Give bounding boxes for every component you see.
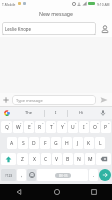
button[interactable]: Hi (68, 107, 94, 119)
button[interactable] (38, 184, 75, 200)
button[interactable]: , (17, 169, 26, 181)
staticText: P (104, 124, 108, 131)
staticText: Q (5, 124, 9, 131)
button[interactable]: S (18, 137, 28, 149)
button[interactable]: R (35, 121, 45, 133)
button[interactable] (0, 107, 14, 119)
staticText: H (65, 140, 69, 147)
button[interactable] (99, 169, 111, 181)
staticText: T (50, 124, 53, 131)
button[interactable]: O (90, 121, 100, 133)
button[interactable]: V (52, 153, 62, 165)
button[interactable]: B (63, 153, 73, 165)
button[interactable] (94, 107, 112, 119)
staticText: F (44, 140, 47, 147)
staticText: Leslie Knope (5, 26, 32, 32)
button[interactable]: G (51, 137, 61, 149)
button[interactable]: U (68, 121, 78, 133)
staticText: . (93, 172, 95, 179)
button[interactable]: The (14, 107, 44, 119)
staticText: New message (39, 10, 73, 17)
button[interactable]: X (29, 153, 40, 165)
button[interactable]: A (7, 137, 17, 149)
staticText: Hi (79, 110, 84, 116)
staticText: D (32, 140, 36, 147)
button[interactable]: J (73, 137, 83, 149)
staticText: E (28, 124, 31, 131)
button[interactable]: Y (57, 121, 67, 133)
staticText: 4 (42, 121, 44, 124)
staticText: K (87, 140, 91, 147)
button[interactable]: E (24, 121, 34, 133)
button[interactable]: ?123 (1, 169, 16, 181)
button[interactable] (0, 93, 12, 106)
button[interactable]: M (85, 153, 95, 165)
button[interactable]: T (46, 121, 56, 133)
button[interactable] (0, 184, 38, 200)
button[interactable]: F (40, 137, 50, 149)
button[interactable]: I (79, 121, 89, 133)
button[interactable]: EN · ES (37, 169, 88, 181)
staticText: 9 (97, 121, 99, 124)
button[interactable]: N (74, 153, 84, 165)
staticText: I (55, 110, 57, 116)
staticText: Y (61, 124, 64, 131)
button[interactable]: H (62, 137, 72, 149)
button[interactable] (27, 169, 36, 181)
staticText: 7 (75, 121, 77, 124)
staticText: I (83, 124, 85, 131)
staticText: 6 (64, 121, 66, 124)
staticText: V (55, 156, 59, 163)
staticText: J (77, 140, 79, 147)
staticText: U (71, 124, 75, 131)
staticText: W (16, 124, 21, 131)
button[interactable]: L (95, 137, 105, 149)
button[interactable]: I (45, 107, 67, 119)
staticText: Type message (16, 98, 43, 103)
staticText: O (93, 124, 97, 131)
staticText: 5 (53, 121, 55, 124)
button[interactable] (75, 184, 112, 200)
button[interactable] (96, 93, 112, 106)
staticText: N (77, 156, 81, 163)
button[interactable] (1, 153, 16, 165)
button[interactable]: D (29, 137, 39, 149)
staticText: 8 (86, 121, 88, 124)
staticText: ?123 (5, 173, 13, 178)
staticText: EN · ES (59, 174, 68, 178)
button[interactable]: C (41, 153, 51, 165)
staticText: T-Mobile (2, 2, 16, 6)
staticText: L (99, 140, 102, 147)
button[interactable]: . (89, 169, 98, 181)
staticText: X (33, 156, 36, 163)
staticText: M (88, 156, 93, 163)
button[interactable]: P (101, 121, 111, 133)
button[interactable]: Type message (12, 95, 96, 105)
button[interactable]: Z (17, 153, 28, 165)
staticText: 2 (20, 121, 22, 124)
staticText: R (38, 124, 42, 131)
staticText: 9:10 AM (97, 2, 110, 6)
staticText: C (44, 156, 48, 163)
button[interactable]: W (13, 121, 23, 133)
staticText: 1 (9, 121, 11, 124)
staticText: 0 (108, 121, 110, 124)
staticText: S (22, 140, 25, 147)
staticText: The (25, 110, 33, 116)
staticText: B (66, 156, 70, 163)
button[interactable] (100, 24, 109, 33)
button[interactable]: Leslie Knope (2, 22, 96, 35)
button[interactable] (96, 153, 111, 165)
button[interactable]: Q (1, 121, 12, 133)
staticText: , (21, 172, 23, 179)
staticText: Z (21, 156, 24, 163)
staticText: A (10, 140, 14, 147)
staticText: G (54, 140, 58, 147)
staticText: 3 (31, 121, 33, 124)
button[interactable]: K (84, 137, 94, 149)
